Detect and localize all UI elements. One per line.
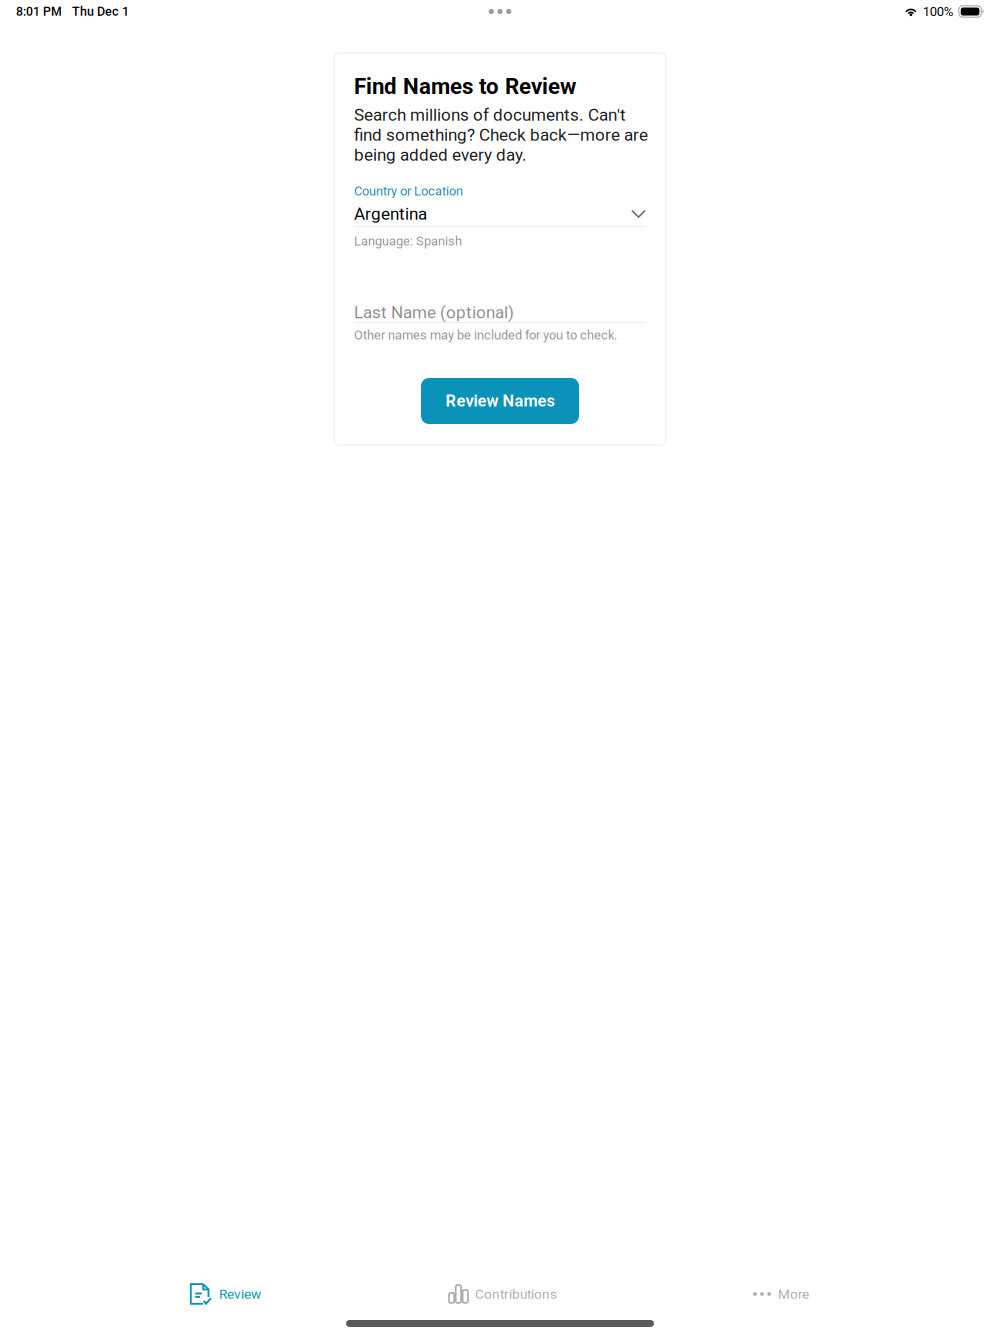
staticText: being added every day. — [354, 145, 527, 165]
staticText: Search millions of documents. Can't — [354, 105, 626, 125]
staticText: More — [778, 1286, 809, 1302]
staticText: find something? Check back—more are — [354, 125, 648, 145]
button[interactable]: Argentina — [354, 201, 646, 227]
button[interactable]: Contributions — [364, 1271, 642, 1317]
staticText: Other names may be included for you to c… — [354, 327, 617, 342]
staticText: Argentina — [354, 204, 427, 224]
staticText: Review Names — [445, 391, 554, 411]
button[interactable]: Review — [86, 1271, 364, 1317]
staticText: Last Name (optional) — [354, 302, 514, 322]
button[interactable]: Review Names — [421, 378, 579, 424]
staticText: Language: Spanish — [354, 233, 462, 248]
button[interactable]: More — [642, 1271, 920, 1317]
staticText: 100% — [923, 4, 954, 19]
staticText: 8:01 PM — [16, 4, 62, 19]
staticText: Country or Location — [354, 183, 463, 198]
staticText: Find Names to Review — [354, 73, 576, 100]
staticText: Thu Dec 1 — [72, 4, 129, 19]
staticText: Contributions — [475, 1286, 557, 1302]
button[interactable]: Last Name (optional) — [354, 303, 646, 322]
staticText: Review — [219, 1286, 261, 1302]
